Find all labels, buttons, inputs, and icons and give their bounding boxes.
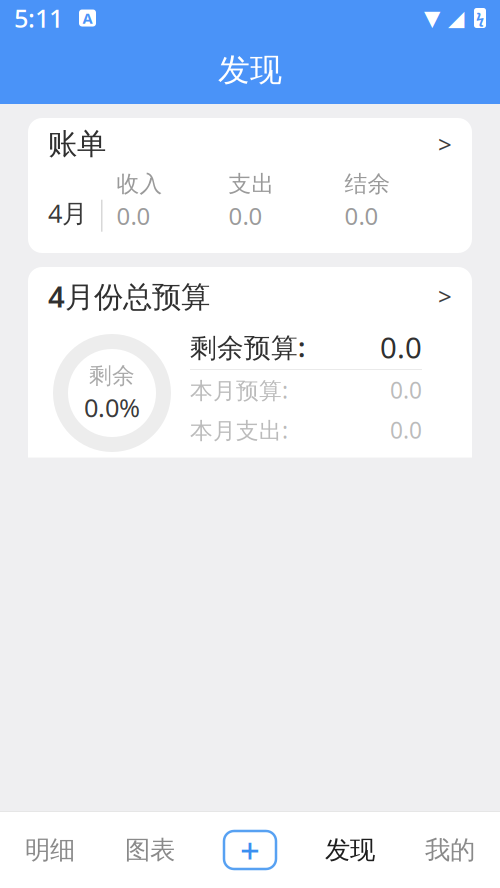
staticText: 发现	[218, 50, 282, 90]
staticText: 图表	[125, 834, 175, 865]
staticText: 账单	[48, 126, 106, 162]
button[interactable]: 4月份总预算	[28, 267, 472, 489]
staticText: 收入	[116, 170, 162, 198]
button[interactable]: 明细	[0, 812, 100, 888]
button[interactable]: Add	[200, 812, 300, 888]
staticText: ϟ	[476, 8, 484, 28]
staticText: 结余	[344, 170, 390, 198]
staticText: 0.0	[228, 200, 262, 232]
staticText: 本月预算:	[190, 375, 288, 405]
staticText: 0.0%	[84, 391, 140, 424]
button[interactable]: 图表	[100, 812, 200, 888]
staticText: >	[438, 128, 452, 160]
staticText: 4月份总预算	[48, 276, 210, 315]
staticText: 0.0	[116, 200, 150, 232]
staticText: 发现	[325, 834, 375, 865]
staticText: A	[82, 8, 92, 28]
staticText: ▼	[424, 6, 440, 30]
button[interactable]: 发现	[300, 812, 400, 888]
staticText: 剩余预算:	[190, 329, 305, 365]
staticText: +	[240, 827, 260, 873]
button[interactable]: 我的	[400, 812, 500, 888]
staticText: 0.0	[380, 327, 422, 366]
staticText: 4月	[48, 196, 87, 230]
staticText: 0.0	[390, 415, 422, 445]
staticText: 5:11	[14, 1, 63, 35]
staticText: 支出	[228, 170, 274, 198]
staticText: 0.0	[344, 200, 378, 232]
staticText: ◢	[448, 6, 464, 30]
staticText: >	[438, 280, 452, 312]
staticText: 本月支出:	[190, 415, 288, 445]
staticText: 明细	[25, 834, 75, 865]
button[interactable]: 账单	[28, 118, 472, 253]
staticText: 0.0	[390, 375, 422, 405]
staticText: 剩余	[89, 362, 135, 390]
staticText: 我的	[425, 834, 475, 865]
